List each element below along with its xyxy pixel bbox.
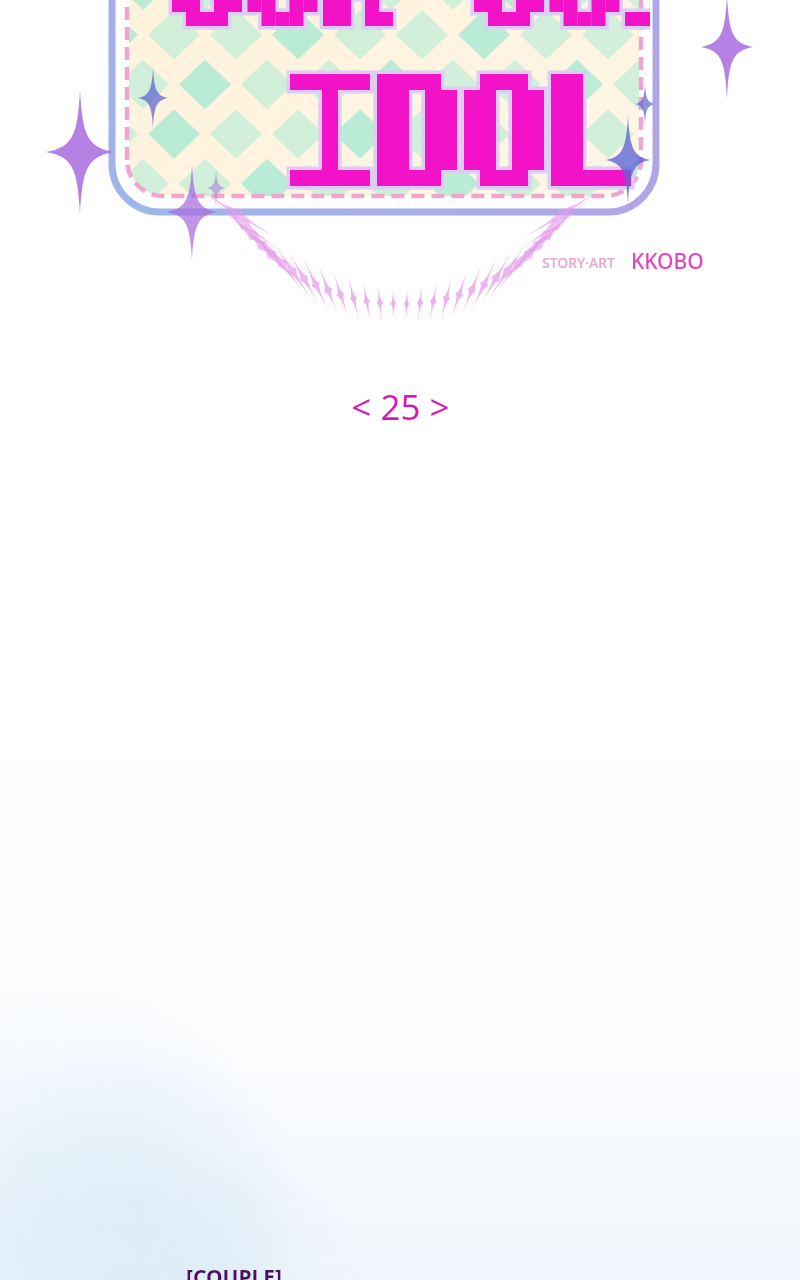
staticText: [COUPLE] bbox=[186, 1263, 282, 1280]
staticText: STORY·ART bbox=[542, 253, 615, 272]
staticText: < 25 > bbox=[351, 383, 450, 431]
button[interactable]: STORY·ART bbox=[542, 253, 615, 272]
button[interactable]: Episode 25, previous and next bbox=[351, 383, 450, 431]
staticText: KKOBO bbox=[631, 247, 704, 276]
button[interactable]: KKOBO bbox=[631, 247, 704, 276]
